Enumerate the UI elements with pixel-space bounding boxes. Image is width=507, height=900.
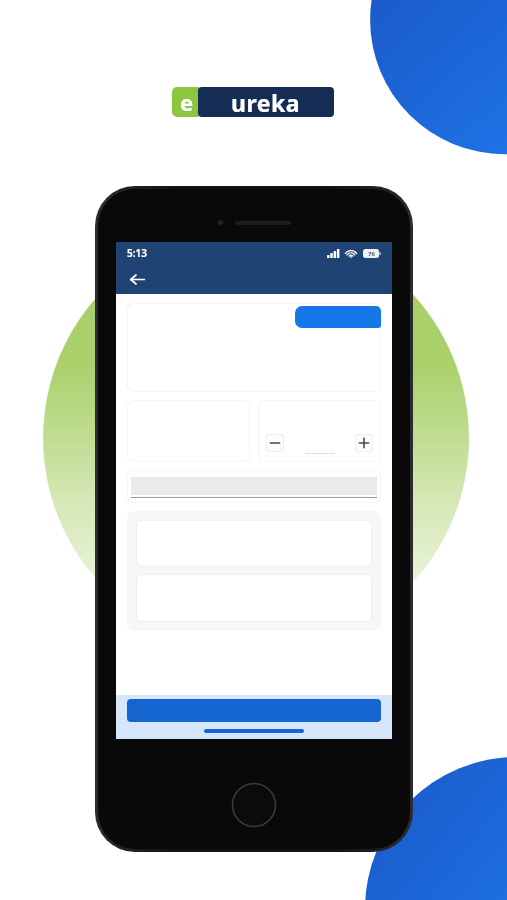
staticText: ureka <box>231 87 301 117</box>
button[interactable]: Primary action <box>127 699 381 722</box>
staticText: 76 <box>368 250 375 258</box>
button[interactable]: Home button <box>231 782 277 828</box>
button[interactable]: Decrease <box>266 434 284 452</box>
button[interactable]: Badge <box>127 303 381 392</box>
button[interactable]: Increase <box>355 434 373 452</box>
button[interactable]: eureka logo <box>172 86 338 118</box>
staticText: e <box>180 87 194 117</box>
button[interactable] <box>127 470 381 503</box>
button[interactable]: Badge <box>295 306 381 328</box>
button[interactable]: Back <box>122 264 152 294</box>
staticText: 5:13 <box>127 246 147 260</box>
